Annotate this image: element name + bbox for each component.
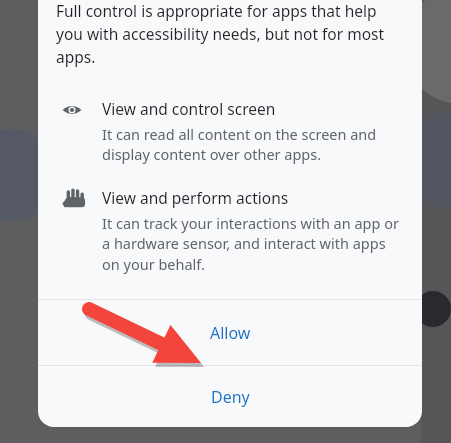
staticText: Full control is appropriate for apps tha… [56, 0, 402, 68]
other: View and control screen [62, 100, 82, 120]
staticText: View and perform actions [102, 187, 289, 208]
button[interactable]: Allow [38, 300, 422, 365]
other: View and perform actions [61, 188, 83, 210]
staticText: It can track your interactions with an a… [102, 213, 400, 275]
button[interactable]: Deny [38, 366, 422, 427]
staticText: Deny [211, 386, 250, 408]
staticText: Allow [210, 322, 251, 344]
staticText: View and control screen [102, 98, 276, 119]
staticText: It can read all content on the screen an… [102, 124, 400, 165]
